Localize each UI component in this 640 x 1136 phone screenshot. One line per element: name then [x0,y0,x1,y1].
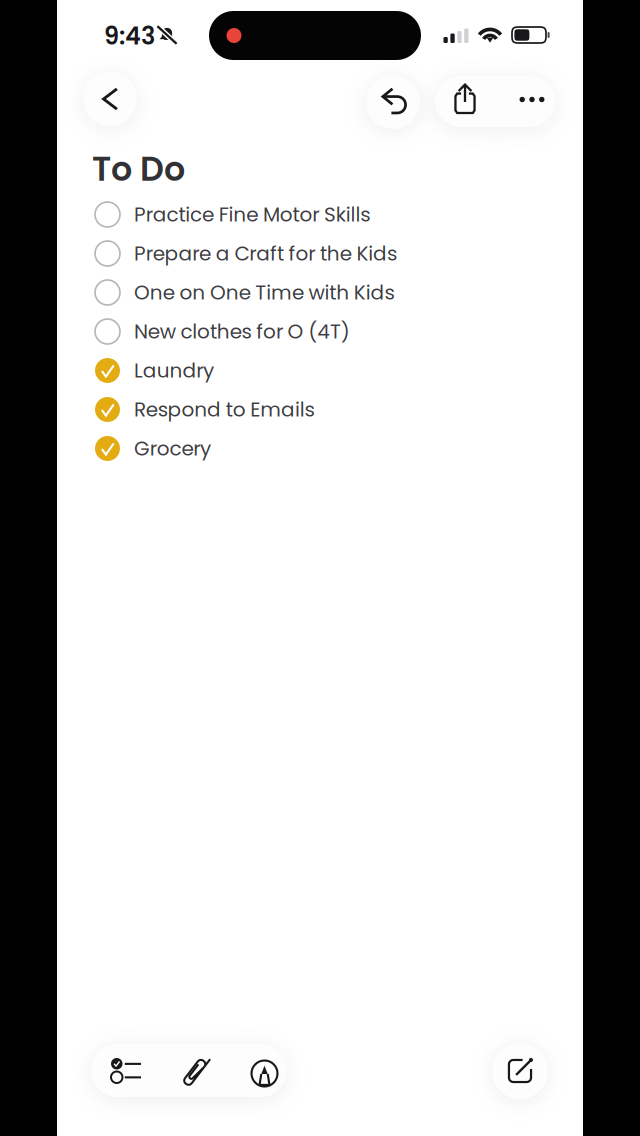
button[interactable]: Practice Fine Motor Skills [95,195,529,234]
button[interactable]: Checklist [91,1044,161,1097]
button[interactable]: Attach file [161,1044,232,1097]
button[interactable]: Compose [492,1043,548,1099]
button[interactable]: Share [435,76,495,127]
button[interactable]: Prepare a Craft for the Kids [95,234,529,273]
button[interactable]: One on One Time with Kids [95,273,529,312]
staticText: 9:43 [104,19,155,53]
staticText: To Do [92,146,185,192]
button[interactable]: Markup [232,1044,287,1097]
staticText: Laundry [134,356,214,384]
staticText: One on One Time with Kids [134,278,394,306]
staticText: Grocery [134,434,211,462]
button[interactable]: Respond to Emails [95,390,529,429]
staticText: Practice Fine Motor Skills [134,200,370,228]
button[interactable]: Back [83,72,137,126]
staticText: New clothes for O (4T) [134,317,350,345]
button[interactable]: Grocery [95,429,529,468]
button[interactable]: Laundry [95,351,529,390]
button[interactable]: Undo [366,75,420,129]
button[interactable]: New clothes for O (4T) [95,312,529,351]
button[interactable]: More options [495,76,555,127]
staticText: Prepare a Craft for the Kids [134,239,397,267]
staticText: Respond to Emails [134,395,315,423]
